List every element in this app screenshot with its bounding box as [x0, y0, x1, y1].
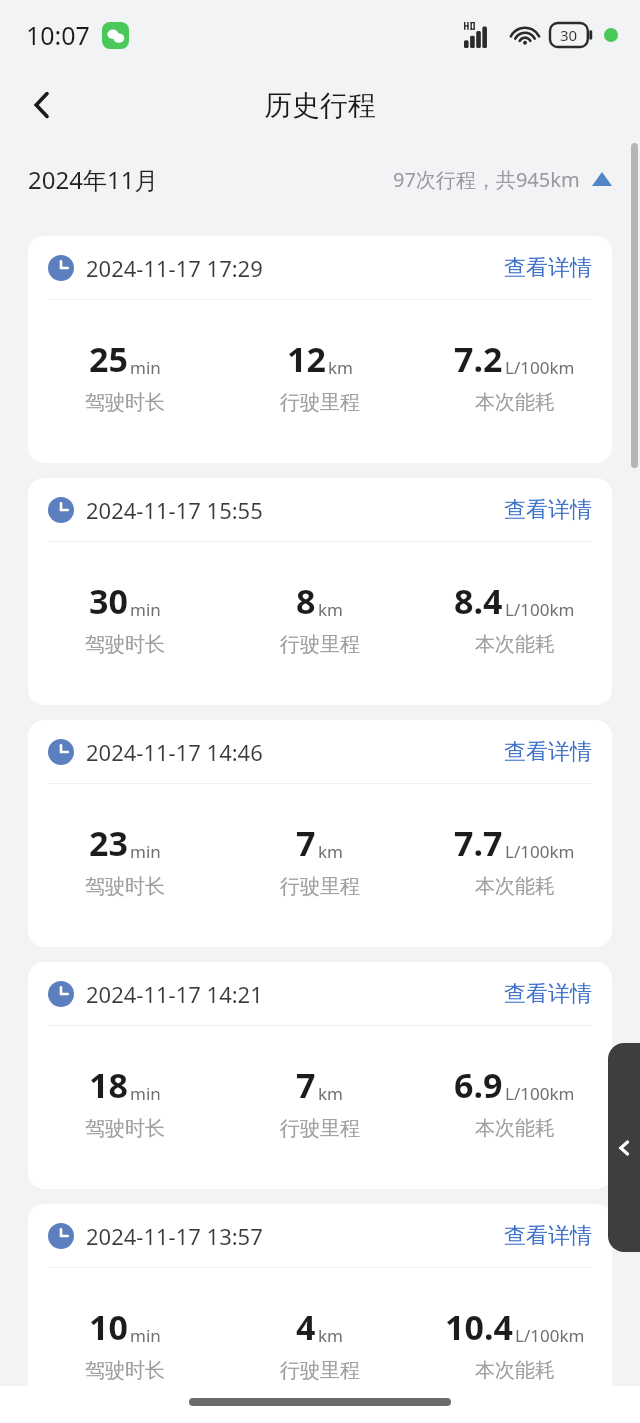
- staticText: 7.2: [454, 336, 503, 382]
- button[interactable]: 2024-11-17 14:21: [28, 962, 612, 1189]
- staticText: 6.9: [454, 1062, 503, 1108]
- staticText: km: [328, 356, 353, 379]
- staticText: 历史行程: [264, 88, 376, 123]
- staticText: 本次能耗: [475, 874, 555, 899]
- staticText: 本次能耗: [475, 390, 555, 415]
- staticText: 2024-11-17 13:57: [86, 1221, 263, 1251]
- button[interactable]: 2024-11-17 17:29: [28, 236, 612, 463]
- staticText: 7.7: [454, 820, 503, 866]
- staticText: 查看详情: [504, 254, 592, 282]
- staticText: 本次能耗: [475, 1116, 555, 1141]
- staticText: 18: [89, 1062, 128, 1108]
- staticText: min: [130, 1082, 161, 1105]
- button[interactable]: 2024-11-17 15:55: [28, 478, 612, 705]
- staticText: L/100km: [505, 840, 575, 863]
- staticText: 行驶里程: [280, 874, 360, 899]
- staticText: 10: [89, 1304, 128, 1350]
- staticText: 2024-11-17 14:21: [86, 979, 263, 1009]
- staticText: 本次能耗: [475, 632, 555, 657]
- staticText: 23: [89, 820, 128, 866]
- staticText: 驾驶时长: [85, 1116, 165, 1141]
- staticText: 10.4: [445, 1304, 513, 1350]
- staticText: 驾驶时长: [85, 632, 165, 657]
- staticText: min: [130, 598, 161, 621]
- staticText: 行驶里程: [280, 632, 360, 657]
- staticText: km: [318, 840, 343, 863]
- button[interactable]: 查看详情: [504, 1222, 592, 1250]
- staticText: 4: [296, 1304, 316, 1350]
- staticText: min: [130, 356, 161, 379]
- staticText: 2024-11-17 14:46: [86, 737, 263, 767]
- staticText: 行驶里程: [280, 390, 360, 415]
- staticText: km: [318, 1082, 343, 1105]
- staticText: min: [130, 1324, 161, 1347]
- staticText: 12: [287, 336, 326, 382]
- staticText: L/100km: [515, 1324, 585, 1347]
- staticText: 30: [89, 578, 128, 624]
- staticText: 行驶里程: [280, 1358, 360, 1383]
- button[interactable]: 查看详情: [504, 980, 592, 1008]
- staticText: 查看详情: [504, 980, 592, 1008]
- staticText: L/100km: [505, 356, 575, 379]
- staticText: 7: [296, 1062, 316, 1108]
- button[interactable]: 查看详情: [504, 254, 592, 282]
- staticText: 查看详情: [504, 738, 592, 766]
- staticText: L/100km: [505, 1082, 575, 1105]
- staticText: 本次能耗: [475, 1358, 555, 1383]
- staticText: 查看详情: [504, 496, 592, 524]
- staticText: 10:07: [26, 18, 90, 52]
- staticText: L/100km: [505, 598, 575, 621]
- staticText: 30: [560, 25, 578, 45]
- staticText: 驾驶时长: [85, 1358, 165, 1383]
- staticText: 查看详情: [504, 1222, 592, 1250]
- staticText: 驾驶时长: [85, 390, 165, 415]
- staticText: km: [318, 1324, 343, 1347]
- staticText: 2024-11-17 15:55: [86, 495, 263, 525]
- button[interactable]: 2024-11-17 13:57: [28, 1204, 612, 1423]
- button[interactable]: 2024年11月: [28, 140, 612, 218]
- staticText: 行驶里程: [280, 1116, 360, 1141]
- staticText: km: [318, 598, 343, 621]
- button[interactable]: 查看详情: [504, 738, 592, 766]
- staticText: min: [130, 840, 161, 863]
- staticText: 25: [89, 336, 128, 382]
- staticText: 8: [296, 578, 316, 624]
- staticText: 2024-11-17 17:29: [86, 253, 263, 283]
- button[interactable]: 查看详情: [504, 496, 592, 524]
- staticText: 97次行程，共945km: [393, 166, 580, 193]
- staticText: 驾驶时长: [85, 874, 165, 899]
- staticText: 7: [296, 820, 316, 866]
- button[interactable]: 2024-11-17 14:46: [28, 720, 612, 947]
- button[interactable]: Expand side panel: [608, 1043, 640, 1252]
- staticText: 8.4: [454, 578, 503, 624]
- button[interactable]: Back: [18, 81, 66, 129]
- staticText: 2024年11月: [28, 163, 159, 196]
